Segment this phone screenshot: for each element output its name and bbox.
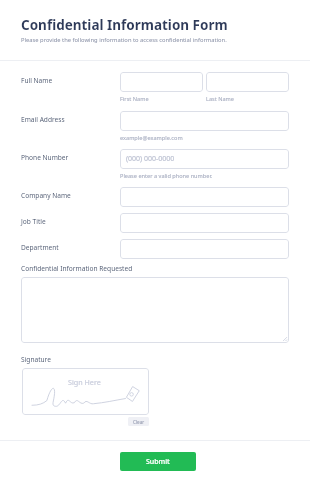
button[interactable] bbox=[120, 187, 289, 207]
staticText: (000) 000-0000 bbox=[126, 154, 175, 164]
button[interactable] bbox=[120, 213, 289, 233]
button[interactable]: Submit bbox=[120, 452, 196, 471]
button[interactable] bbox=[120, 72, 203, 92]
button[interactable] bbox=[120, 239, 289, 259]
staticText: Company Name bbox=[21, 191, 71, 200]
staticText: Signature bbox=[21, 355, 51, 364]
button[interactable] bbox=[206, 72, 289, 92]
button[interactable]: (000) 000-0000 bbox=[120, 149, 289, 169]
staticText: Confidential Information Requested bbox=[21, 264, 133, 273]
button[interactable] bbox=[120, 111, 289, 131]
staticText: Please enter a valid phone number. bbox=[120, 172, 213, 180]
staticText: Clear bbox=[133, 419, 145, 425]
button[interactable]: Signature pad, sign here bbox=[22, 368, 149, 415]
staticText: Sign Here bbox=[68, 377, 101, 387]
staticText: Please provide the following information… bbox=[21, 36, 227, 44]
staticText: First Name bbox=[120, 95, 149, 103]
staticText: example@example.com bbox=[120, 134, 183, 142]
staticText: Last Name bbox=[206, 95, 234, 103]
button[interactable]: Clear bbox=[128, 417, 149, 426]
staticText: Job Title bbox=[21, 217, 46, 226]
staticText: Confidential Information Form bbox=[21, 16, 228, 34]
staticText: Full Name bbox=[21, 76, 53, 85]
staticText: Email Address bbox=[21, 115, 65, 124]
button[interactable] bbox=[21, 277, 289, 343]
staticText: Department bbox=[21, 243, 59, 252]
staticText: Submit bbox=[146, 457, 170, 467]
staticText: Phone Number bbox=[21, 153, 69, 162]
